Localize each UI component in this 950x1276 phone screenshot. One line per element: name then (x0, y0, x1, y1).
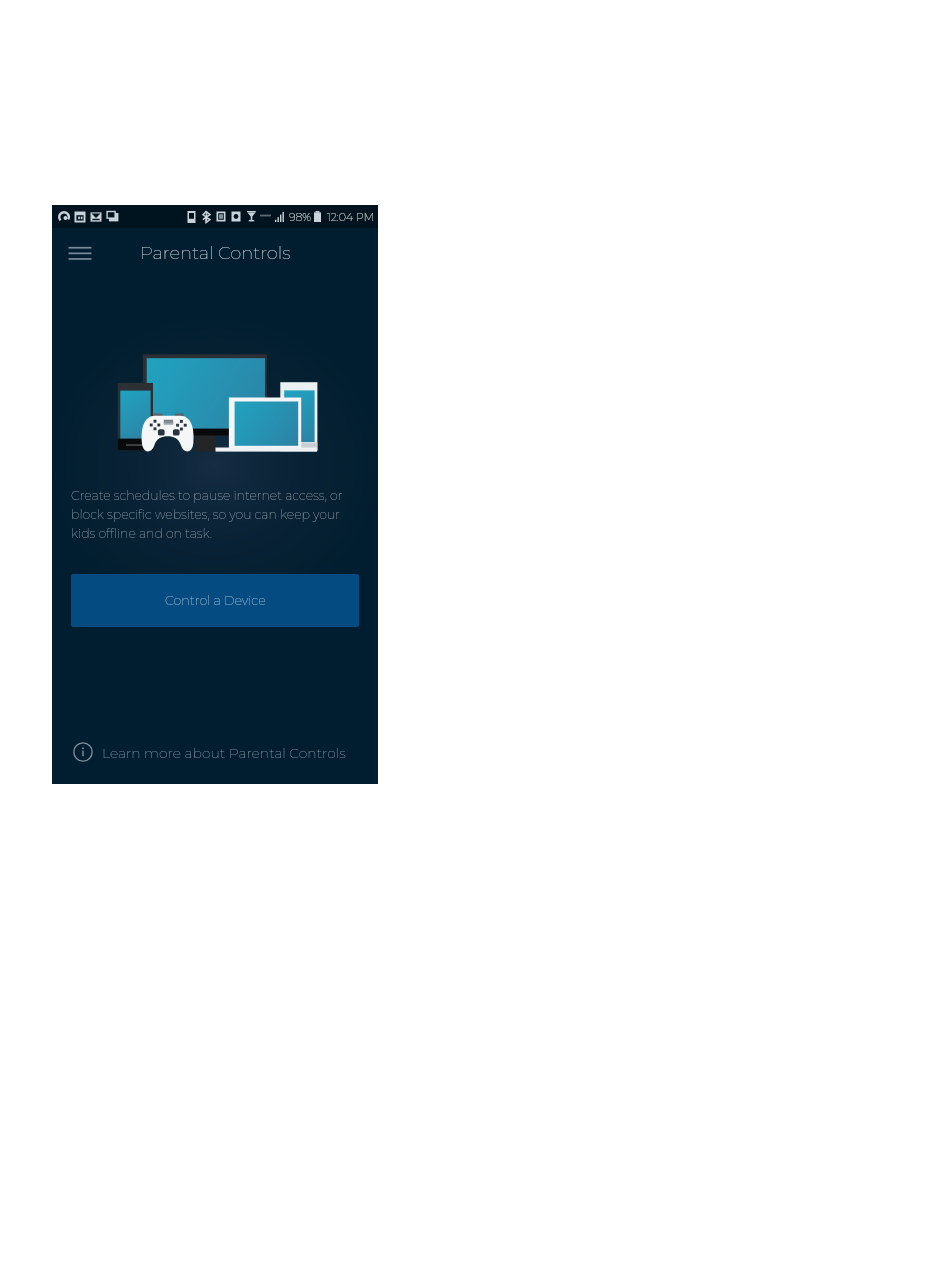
button[interactable]: Control a Device (71, 574, 359, 627)
button[interactable]: Learn more about Parental Controls (52, 734, 378, 770)
button[interactable]: Open navigation menu (67, 240, 93, 266)
staticText: 98% (289, 210, 312, 223)
staticText: 12:04 PM (327, 210, 375, 223)
staticText: Learn more about Parental Controls (102, 744, 346, 761)
staticText: Create schedules to pause internet acces… (71, 488, 356, 541)
staticText: Parental Controls (140, 242, 291, 264)
staticText: Control a Device (165, 593, 266, 608)
